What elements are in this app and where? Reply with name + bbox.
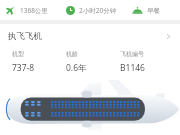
staticText: 737-8 <box>12 62 35 74</box>
staticText: 执飞飞机 <box>8 31 42 42</box>
staticText: B1146 <box>120 62 145 74</box>
staticText: 0.6年 <box>66 62 87 74</box>
button[interactable]: 执飞飞机 <box>0 24 180 48</box>
staticText: 机龄 <box>66 50 78 58</box>
other: Duration <box>66 6 75 15</box>
staticText: 机型 <box>12 50 24 58</box>
staticText: 飞机编号 <box>120 50 144 58</box>
staticText: 2小时20分钟 <box>79 6 117 15</box>
other: Meal <box>132 5 143 16</box>
staticText: 1368公里 <box>20 6 48 15</box>
staticText: 早餐 <box>147 7 160 15</box>
other: Distance <box>5 5 16 16</box>
